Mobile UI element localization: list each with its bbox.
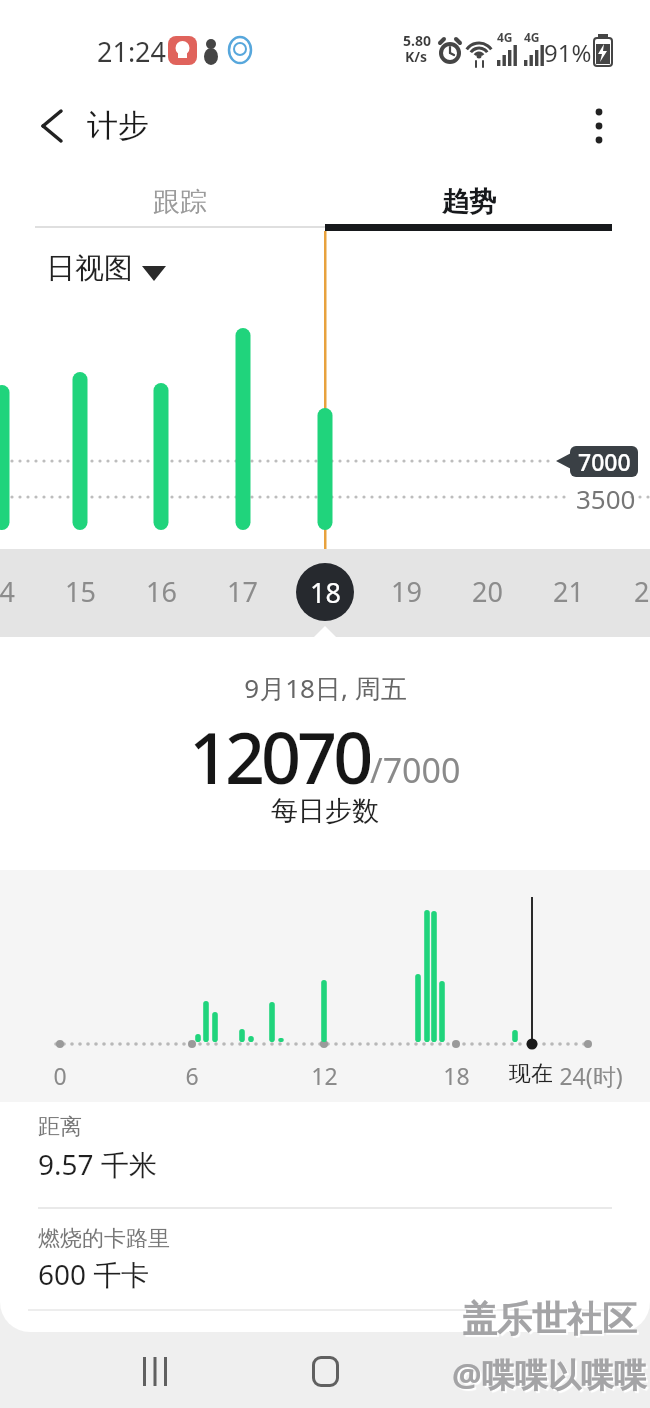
button[interactable]: 18 xyxy=(296,563,354,621)
staticText: 24(时) xyxy=(559,1060,623,1091)
button[interactable]: 14 xyxy=(0,556,34,626)
staticText: 20 xyxy=(472,573,503,610)
staticText: 21 xyxy=(553,573,584,610)
staticText: 19 xyxy=(391,573,422,610)
staticText: /7000 xyxy=(370,747,461,793)
staticText: 7000 xyxy=(578,446,631,477)
staticText: @喋喋以喋喋 xyxy=(452,1352,647,1397)
staticText: 12070 xyxy=(189,709,370,789)
staticText: 17 xyxy=(227,573,258,610)
staticText: 5.80 xyxy=(403,31,431,50)
button[interactable] xyxy=(306,1350,344,1392)
staticText: 14 xyxy=(0,573,15,610)
staticText: 距离 xyxy=(38,1113,82,1141)
staticText: 跟踪 xyxy=(153,185,207,219)
button[interactable]: 20 xyxy=(452,556,522,626)
staticText: 现在 xyxy=(509,1060,553,1088)
staticText: 燃烧的卡路里 xyxy=(38,1225,170,1253)
staticText: 0 xyxy=(53,1060,67,1091)
button[interactable] xyxy=(478,1350,522,1392)
staticText: 15 xyxy=(65,573,96,610)
staticText: 每日步数 xyxy=(271,794,379,828)
staticText: 91% xyxy=(544,36,592,69)
staticText: 4G xyxy=(497,29,513,45)
button[interactable]: 趋势 xyxy=(325,178,612,226)
staticText: 计步 xyxy=(87,106,149,145)
staticText: 9.57 千米 xyxy=(38,1145,157,1183)
button[interactable]: 跟踪 xyxy=(35,178,325,226)
staticText: 22 xyxy=(634,573,650,610)
button[interactable] xyxy=(132,1348,178,1394)
button[interactable]: 22 xyxy=(614,556,650,626)
staticText: 日视图 xyxy=(46,250,133,287)
button[interactable] xyxy=(576,102,622,150)
staticText: 21:24 xyxy=(97,33,167,70)
button[interactable]: 15 xyxy=(45,556,115,626)
staticText: 6 xyxy=(185,1060,199,1091)
button[interactable]: 19 xyxy=(371,556,441,626)
staticText: 3500 xyxy=(576,481,636,516)
button[interactable] xyxy=(26,100,78,152)
button[interactable]: 日视图 xyxy=(46,248,161,288)
staticText: 盖乐世社区 xyxy=(462,1297,637,1341)
staticText: K/s xyxy=(405,47,428,66)
staticText: 趋势 xyxy=(442,185,496,219)
button[interactable]: 17 xyxy=(207,556,277,626)
staticText: 4G xyxy=(524,29,540,45)
staticText: 18 xyxy=(310,574,341,611)
button[interactable]: 16 xyxy=(126,556,196,626)
staticText: 12 xyxy=(311,1060,338,1091)
staticText: 18 xyxy=(443,1060,470,1091)
staticText: 600 千卡 xyxy=(38,1255,150,1293)
button[interactable]: 21 xyxy=(533,556,603,626)
staticText: 16 xyxy=(146,573,177,610)
staticText: 9月18日, 周五 xyxy=(244,670,407,706)
